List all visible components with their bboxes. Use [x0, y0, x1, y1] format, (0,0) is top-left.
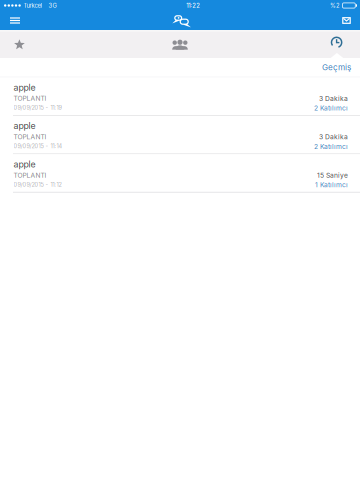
staticText: TOPLANTI — [13, 94, 46, 102]
button[interactable]: Contacts — [160, 31, 200, 58]
button[interactable]: apple — [0, 77, 360, 116]
staticText: 1 Katılımcı — [315, 181, 348, 189]
staticText: Turkcell — [23, 2, 42, 9]
button[interactable]: apple — [0, 116, 360, 154]
staticText: 2 Katılımcı — [314, 104, 348, 112]
staticText: 09/09/2015 - 11:14 — [13, 143, 62, 150]
staticText: apple — [13, 159, 35, 170]
button[interactable]: Favorites — [0, 31, 39, 58]
staticText: %2 — [330, 2, 340, 9]
staticText: 15 Saniye — [317, 171, 348, 179]
staticText: 3 Dakika — [319, 94, 348, 103]
staticText: TOPLANTI — [13, 171, 46, 179]
staticText: Geçmiş — [322, 62, 351, 72]
button[interactable]: Messages — [333, 11, 360, 30]
staticText: 3 Dakika — [319, 133, 348, 141]
staticText: TOPLANTI — [13, 133, 46, 141]
staticText: 09/09/2015 - 11:19 — [13, 104, 61, 111]
button[interactable]: apple — [0, 154, 360, 193]
staticText: 11:22 — [186, 2, 200, 9]
staticText: apple — [13, 121, 35, 131]
button[interactable]: History — [317, 31, 357, 58]
staticText: apple — [13, 82, 35, 93]
staticText: 3G — [48, 2, 56, 9]
button[interactable]: Menu — [0, 11, 30, 30]
staticText: 09/09/2015 - 11:12 — [13, 181, 61, 188]
staticText: 2 Katılımcı — [314, 142, 348, 151]
